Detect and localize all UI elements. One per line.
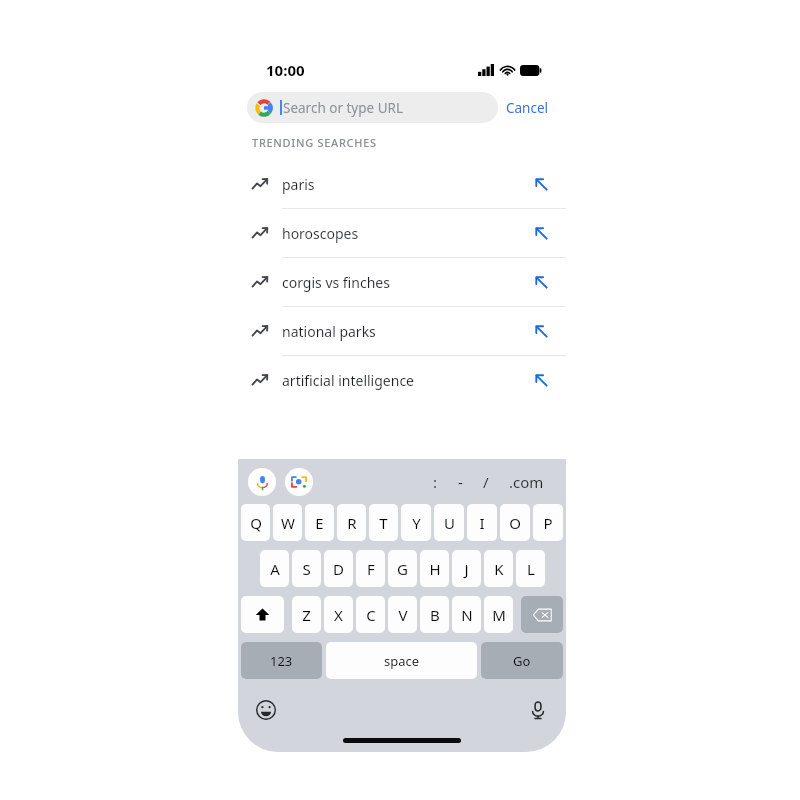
button[interactable]: B xyxy=(420,596,449,633)
button[interactable]: O xyxy=(500,504,530,541)
staticText: V xyxy=(398,605,408,625)
staticText: S xyxy=(302,559,311,579)
staticText: TRENDING SEARCHES xyxy=(252,135,377,150)
staticText: horoscopes xyxy=(282,224,526,243)
button[interactable]: Emoji xyxy=(251,695,281,725)
staticText: D xyxy=(333,559,344,579)
button[interactable]: E xyxy=(305,504,334,541)
button[interactable]: J xyxy=(452,550,481,587)
staticText: Cancel xyxy=(506,99,549,117)
staticText: C xyxy=(366,605,376,625)
button[interactable]: Insert corgis vs finches xyxy=(526,267,556,297)
button[interactable]: U xyxy=(434,504,464,541)
button[interactable]: Search or type URL xyxy=(247,92,498,123)
staticText: W xyxy=(281,513,295,533)
button[interactable]: S xyxy=(292,550,321,587)
staticText: I xyxy=(479,513,485,533)
staticText: O xyxy=(509,513,521,533)
button[interactable]: .com xyxy=(499,466,554,498)
staticText: U xyxy=(444,513,455,533)
staticText: T xyxy=(379,513,388,533)
button[interactable]: W xyxy=(273,504,302,541)
button[interactable]: D xyxy=(324,550,353,587)
button[interactable]: Q xyxy=(241,504,270,541)
staticText: J xyxy=(464,559,469,579)
button[interactable]: Insert paris xyxy=(526,169,556,199)
staticText: Search or type URL xyxy=(283,99,404,117)
button[interactable]: Z xyxy=(292,596,321,633)
button[interactable]: M xyxy=(484,596,513,633)
staticText: Q xyxy=(250,513,262,533)
button[interactable]: A xyxy=(260,550,289,587)
button[interactable]: I xyxy=(467,504,497,541)
button[interactable]: T xyxy=(369,504,398,541)
button[interactable]: corgis vs finches xyxy=(238,258,566,307)
button[interactable]: R xyxy=(337,504,366,541)
button[interactable]: L xyxy=(516,550,545,587)
button[interactable]: : xyxy=(423,466,448,498)
button[interactable]: 123 xyxy=(241,642,322,679)
button[interactable]: Go xyxy=(481,642,563,679)
button[interactable]: F xyxy=(356,550,385,587)
staticText: Go xyxy=(513,652,531,670)
button[interactable]: Voice input xyxy=(523,695,553,725)
staticText: M xyxy=(492,605,506,625)
button[interactable]: - xyxy=(448,466,473,498)
button[interactable]: space xyxy=(326,642,477,679)
button[interactable]: X xyxy=(324,596,353,633)
staticText: artificial intelligence xyxy=(282,371,526,390)
staticText: H xyxy=(429,559,441,579)
staticText: X xyxy=(334,605,343,625)
button[interactable]: K xyxy=(484,550,513,587)
button[interactable]: Google Lens xyxy=(285,468,313,496)
button[interactable]: / xyxy=(473,466,499,498)
button[interactable]: P xyxy=(533,504,563,541)
staticText: N xyxy=(461,605,473,625)
button[interactable]: artificial intelligence xyxy=(238,356,566,404)
staticText: space xyxy=(384,652,420,670)
staticText: A xyxy=(270,559,280,579)
staticText: paris xyxy=(282,175,526,194)
staticText: corgis vs finches xyxy=(282,273,526,292)
button[interactable]: paris xyxy=(238,160,566,209)
button[interactable]: national parks xyxy=(238,307,566,356)
button[interactable]: N xyxy=(452,596,481,633)
staticText: G xyxy=(397,559,408,579)
staticText: B xyxy=(430,605,440,625)
staticText: L xyxy=(527,559,535,579)
button[interactable]: Insert national parks xyxy=(526,316,556,346)
staticText: 10:00 xyxy=(266,60,305,80)
staticText: national parks xyxy=(282,322,526,341)
button[interactable]: Backspace xyxy=(521,596,563,633)
staticText: : xyxy=(433,472,438,492)
staticText: F xyxy=(367,559,375,579)
button[interactable]: Y xyxy=(401,504,431,541)
staticText: / xyxy=(483,472,489,492)
button[interactable]: V xyxy=(388,596,417,633)
button[interactable]: horoscopes xyxy=(238,209,566,258)
staticText: Z xyxy=(302,605,311,625)
staticText: Y xyxy=(412,513,421,533)
staticText: 123 xyxy=(270,652,293,670)
button[interactable]: Insert horoscopes xyxy=(526,218,556,248)
button[interactable]: Shift xyxy=(241,596,284,633)
staticText: - xyxy=(458,472,463,492)
staticText: K xyxy=(494,559,504,579)
button[interactable]: C xyxy=(356,596,385,633)
staticText: P xyxy=(543,513,553,533)
button[interactable]: H xyxy=(420,550,449,587)
button[interactable]: Insert artificial intelligence xyxy=(526,365,556,395)
button[interactable]: Cancel xyxy=(498,93,557,123)
button[interactable]: G xyxy=(388,550,417,587)
staticText: R xyxy=(347,513,357,533)
staticText: .com xyxy=(509,472,544,492)
staticText: E xyxy=(315,513,324,533)
button[interactable]: Voice search xyxy=(248,468,276,496)
